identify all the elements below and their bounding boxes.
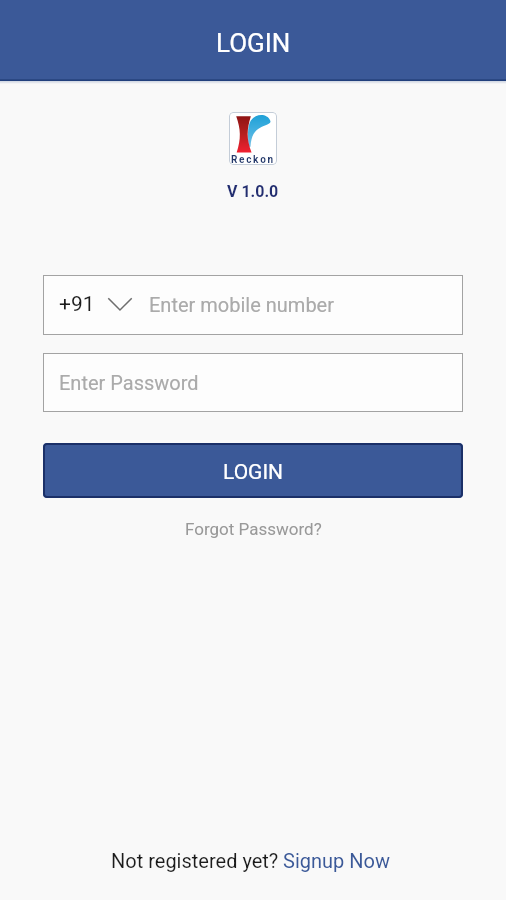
staticText: Enter mobile number — [149, 293, 334, 316]
staticText: +91 — [59, 292, 95, 317]
button[interactable]: LOGIN — [43, 443, 463, 498]
staticText: LOGIN — [216, 28, 291, 58]
button[interactable]: Enter mobile number — [149, 276, 463, 334]
button[interactable]: Select country code — [43, 277, 149, 334]
staticText: Enter Password — [59, 371, 199, 394]
staticText: V 1.0.0 — [227, 182, 279, 201]
button[interactable]: Forgot Password? — [177, 515, 330, 543]
staticText: Not registered yet? — [111, 849, 279, 872]
staticText: LOGIN — [223, 460, 284, 485]
staticText: Reckon — [231, 154, 275, 165]
button[interactable]: Signup Now — [279, 849, 390, 872]
button[interactable]: Enter Password — [43, 353, 463, 412]
